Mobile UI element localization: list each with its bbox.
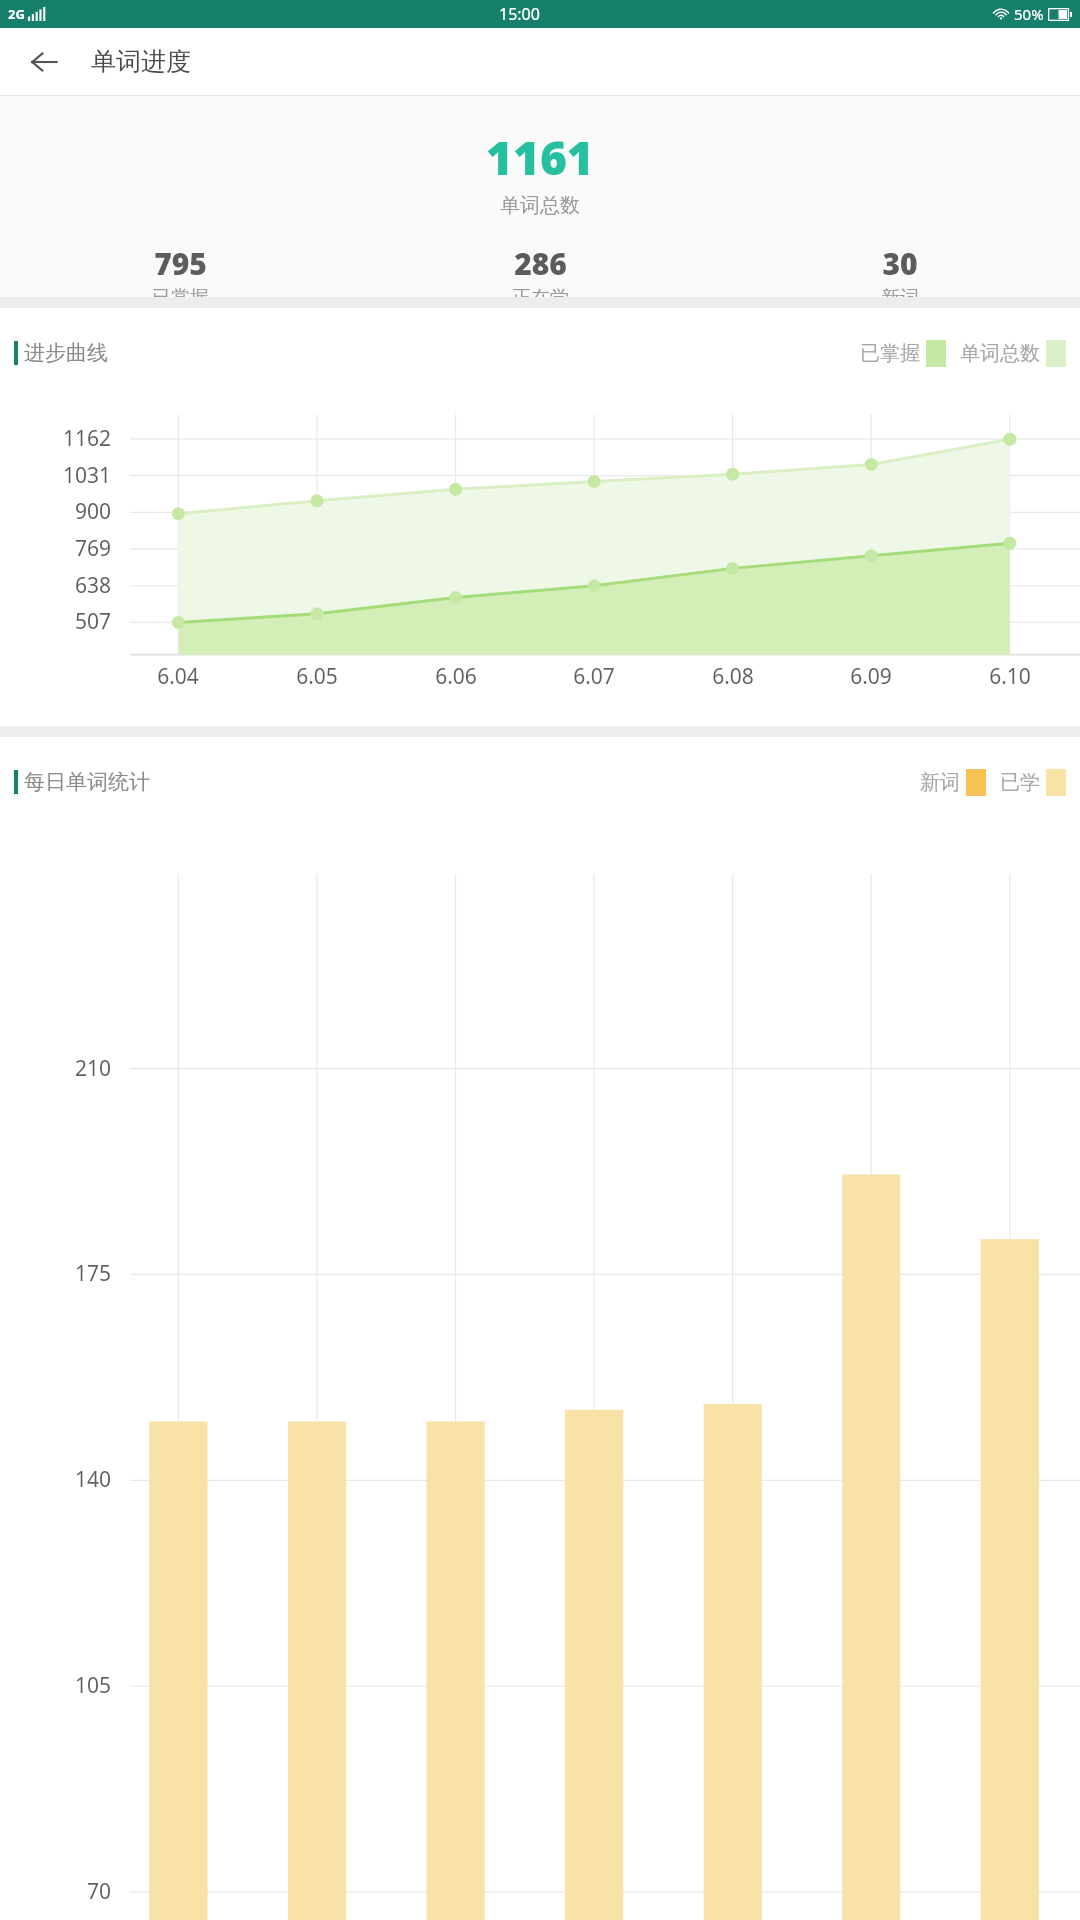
staticText: 210 — [59, 1054, 111, 1083]
staticText: 已掌握 — [152, 286, 209, 297]
staticText: 2G — [8, 5, 25, 23]
staticText: 6.06 — [420, 662, 492, 691]
staticText: 175 — [59, 1259, 111, 1288]
staticText: 已学 — [1000, 770, 1040, 795]
staticText: 进步曲线 — [24, 340, 108, 366]
staticText: 286 — [514, 243, 567, 284]
staticText: 769 — [59, 534, 111, 563]
button[interactable]: 286 — [360, 243, 720, 297]
staticText: 新词 — [881, 286, 919, 297]
staticText: 140 — [59, 1465, 111, 1494]
staticText: 50% — [1014, 4, 1044, 24]
staticText: 每日单词统计 — [24, 769, 150, 795]
staticText: 正在学 — [512, 286, 569, 297]
staticText: 新词 — [920, 770, 960, 795]
staticText: 6.05 — [281, 662, 353, 691]
staticText: 1161 — [486, 126, 594, 189]
staticText: 638 — [59, 571, 111, 600]
staticText: 30 — [882, 243, 918, 284]
staticText: 1162 — [59, 424, 111, 453]
staticText: 6.07 — [558, 662, 630, 691]
staticText: 已掌握 — [860, 341, 920, 366]
staticText: 15:00 — [499, 3, 540, 25]
staticText: 6.04 — [142, 662, 214, 691]
button[interactable]: Back — [16, 34, 72, 90]
staticText: 6.09 — [835, 662, 907, 691]
staticText: 6.10 — [974, 662, 1046, 691]
staticText: 6.08 — [697, 662, 769, 691]
staticText: 105 — [59, 1671, 111, 1700]
staticText: 1031 — [59, 461, 111, 490]
staticText: 507 — [59, 607, 111, 636]
staticText: 900 — [59, 497, 111, 526]
staticText: 单词总数 — [960, 341, 1040, 366]
staticText: 单词进度 — [91, 46, 191, 77]
staticText: 单词总数 — [500, 193, 580, 218]
staticText: 795 — [154, 243, 207, 284]
button[interactable]: 795 — [0, 243, 360, 297]
staticText: 70 — [59, 1877, 111, 1906]
button[interactable]: 30 — [720, 243, 1080, 297]
